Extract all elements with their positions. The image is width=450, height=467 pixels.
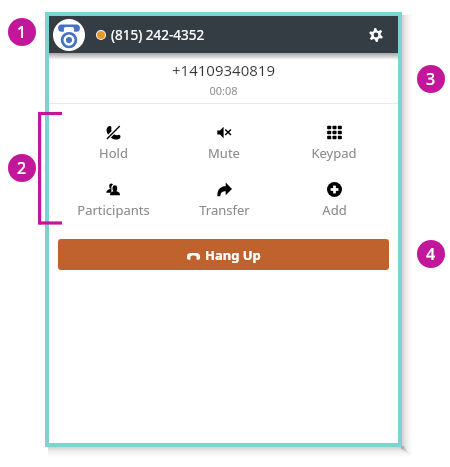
button[interactable]: Keypad — [279, 125, 389, 162]
staticText: 2 — [17, 157, 27, 179]
staticText: Mute — [208, 144, 240, 162]
staticText: Keypad — [311, 144, 357, 162]
button[interactable]: Hang Up — [58, 239, 389, 270]
button[interactable]: Add — [279, 182, 389, 219]
staticText: 00:08 — [49, 83, 398, 98]
staticText: Transfer — [199, 201, 250, 219]
button[interactable]: Mute — [169, 125, 279, 162]
staticText: Hold — [99, 144, 128, 162]
staticText: 1 — [17, 21, 27, 43]
staticText: 4 — [426, 243, 436, 265]
button[interactable]: Hold — [58, 125, 169, 162]
staticText: 3 — [426, 68, 436, 90]
staticText: Participants — [77, 201, 150, 219]
staticText: +14109340819 — [49, 60, 398, 80]
button[interactable]: Transfer — [169, 182, 279, 219]
button[interactable]: Participants — [58, 182, 169, 219]
staticText: Hang Up — [205, 246, 261, 264]
staticText: Add — [322, 201, 347, 219]
button[interactable]: Settings — [363, 22, 389, 48]
staticText: (815) 242-4352 — [111, 26, 205, 44]
